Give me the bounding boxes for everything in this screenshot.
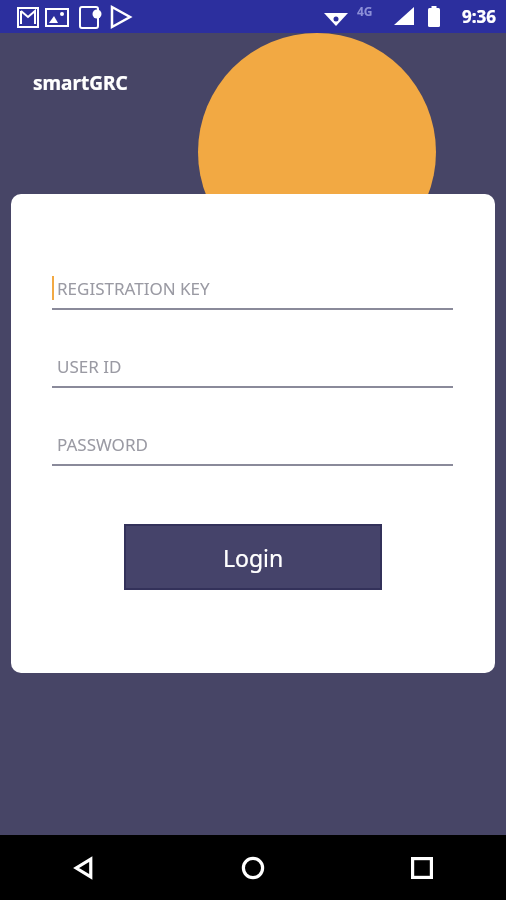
staticText: PASSWORD [57,433,148,456]
button[interactable]: Login [124,524,382,590]
staticText: USER ID [57,355,122,378]
button[interactable]: Recent apps [337,835,506,900]
button[interactable]: USER ID [52,344,453,388]
button[interactable]: Home [168,835,337,900]
staticText: REGISTRATION KEY [57,277,210,300]
staticText: 4G [357,3,373,19]
staticText: smartGRC [33,70,128,96]
staticText: Login [223,542,284,573]
button[interactable]: PASSWORD [52,422,453,466]
staticText: 9:36 [462,5,496,28]
button[interactable]: REGISTRATION KEY [52,266,453,310]
button[interactable]: Back [0,835,168,900]
